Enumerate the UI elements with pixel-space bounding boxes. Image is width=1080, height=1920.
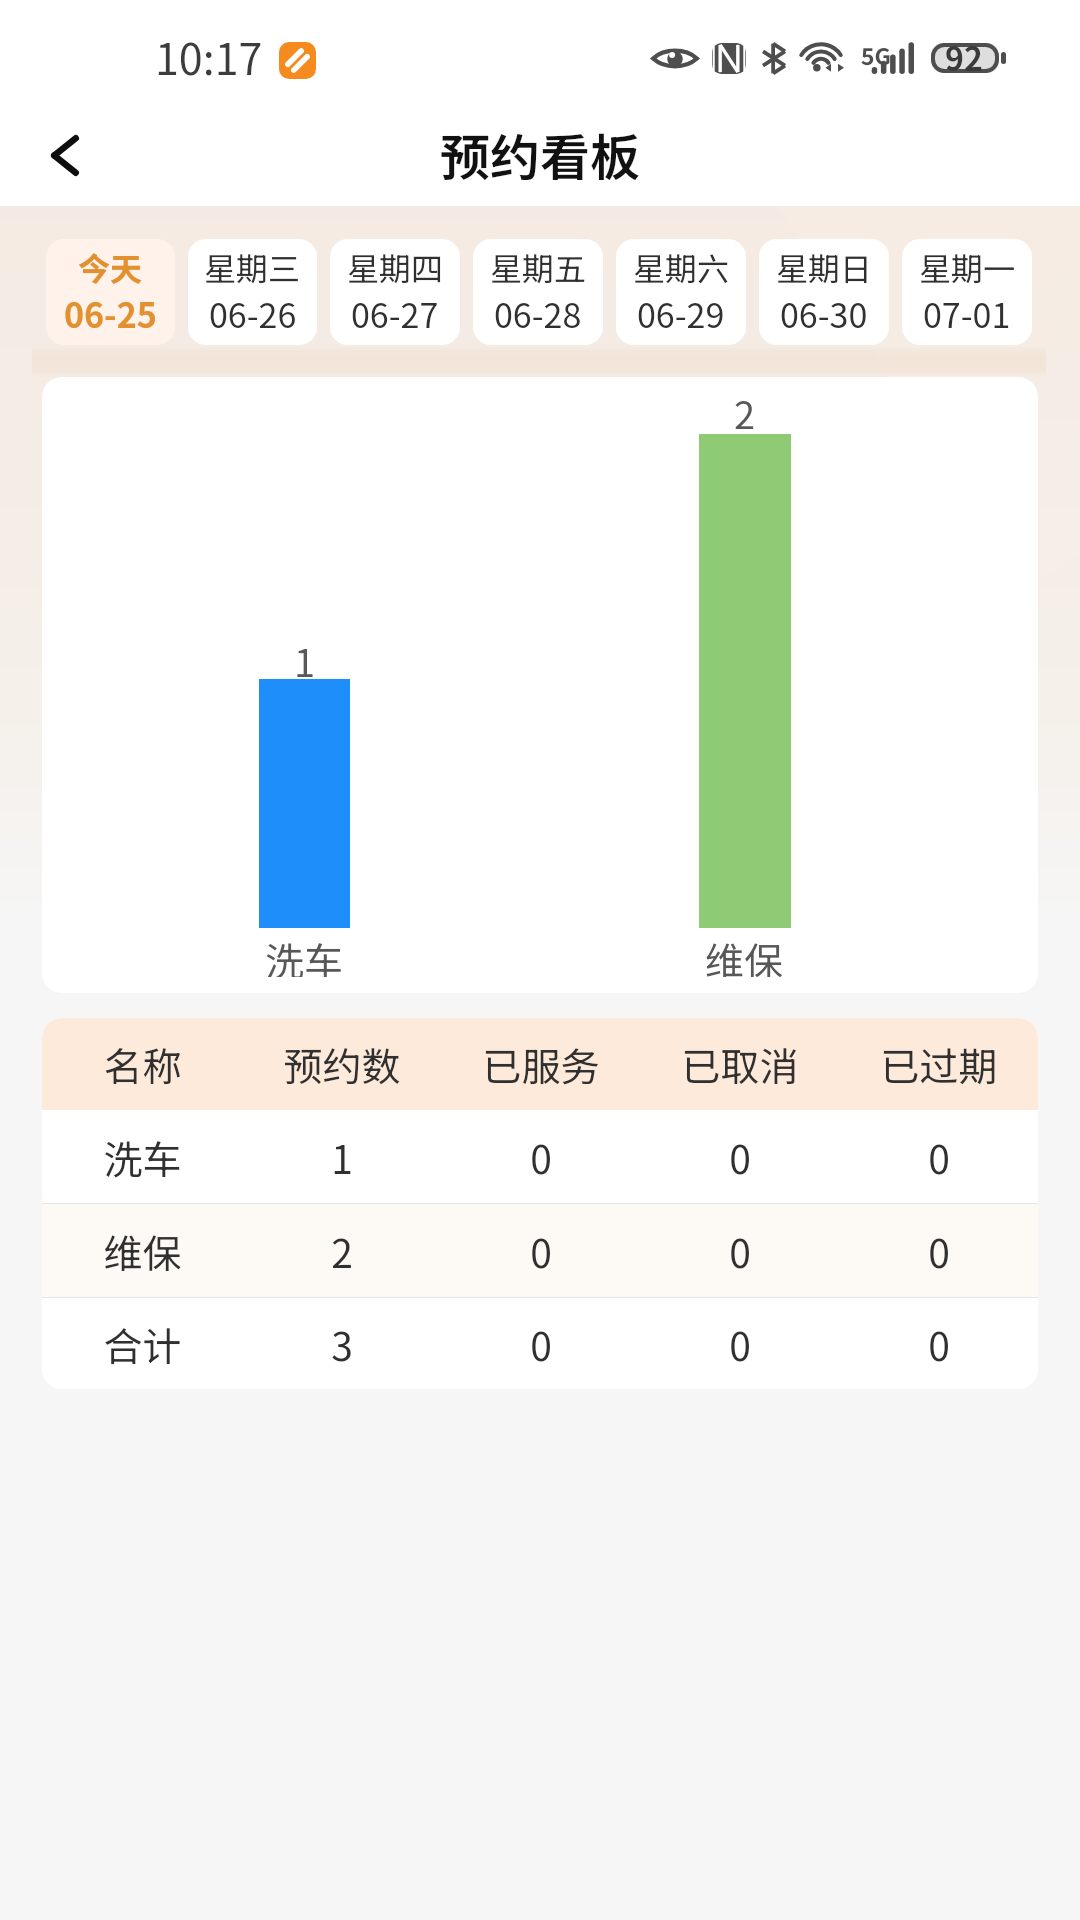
staticText: 星期六 xyxy=(633,244,730,290)
staticText: 92 xyxy=(945,34,983,80)
button[interactable]: 星期五 xyxy=(473,239,603,345)
staticText: 06-28 xyxy=(494,289,582,335)
staticText: 2 xyxy=(734,385,756,431)
staticText: 星期日 xyxy=(776,244,873,290)
staticText: 已服务 xyxy=(482,1036,600,1092)
staticText: 06-29 xyxy=(637,289,725,335)
staticText: 维保 xyxy=(103,1223,182,1279)
staticText: 0 xyxy=(928,1316,950,1372)
button[interactable]: Back xyxy=(20,110,110,200)
staticText: 0 xyxy=(530,1223,552,1279)
staticText: 已取消 xyxy=(681,1036,799,1092)
staticText: 已过期 xyxy=(880,1036,998,1092)
staticText: 0 xyxy=(729,1129,751,1185)
staticText: 星期三 xyxy=(204,244,301,290)
staticText: 0 xyxy=(928,1223,950,1279)
staticText: 3 xyxy=(331,1316,353,1372)
staticText: 1 xyxy=(331,1129,353,1185)
staticText: 2 xyxy=(331,1223,353,1279)
button[interactable]: 星期日 xyxy=(759,239,889,345)
staticText: 星期一 xyxy=(919,244,1016,290)
staticText: 星期五 xyxy=(490,244,587,290)
button[interactable]: 维保 xyxy=(42,1204,1038,1297)
staticText: 07-01 xyxy=(923,289,1011,335)
staticText: 0 xyxy=(530,1316,552,1372)
staticText: 维保 xyxy=(705,931,784,977)
staticText: 预约看板 xyxy=(440,118,640,190)
staticText: 合计 xyxy=(103,1316,182,1372)
staticText: 预约数 xyxy=(283,1036,401,1092)
staticText: 5G xyxy=(861,38,892,70)
button[interactable]: 今天 xyxy=(46,239,175,345)
button[interactable]: 合计 xyxy=(42,1298,1038,1389)
staticText: 洗车 xyxy=(103,1129,182,1185)
staticText: 06-26 xyxy=(209,289,297,335)
button[interactable]: 洗车 xyxy=(42,1110,1038,1203)
staticText: 0 xyxy=(928,1129,950,1185)
button[interactable]: 星期一 xyxy=(902,239,1032,345)
button[interactable]: 星期三 xyxy=(188,239,317,345)
staticText: 0 xyxy=(729,1223,751,1279)
staticText: 0 xyxy=(729,1316,751,1372)
staticText: 今天 xyxy=(78,244,143,290)
staticText: 星期四 xyxy=(347,244,444,290)
staticText: 0 xyxy=(530,1129,552,1185)
staticText: 06-27 xyxy=(351,289,439,335)
staticText: 10:17 xyxy=(155,25,263,87)
staticText: 1 xyxy=(294,633,316,679)
staticText: 06-30 xyxy=(780,289,868,335)
staticText: 06-25 xyxy=(64,289,157,335)
staticText: 洗车 xyxy=(265,931,344,977)
button[interactable]: 星期四 xyxy=(330,239,460,345)
staticText: 名称 xyxy=(103,1036,182,1092)
button[interactable]: 星期六 xyxy=(616,239,746,345)
